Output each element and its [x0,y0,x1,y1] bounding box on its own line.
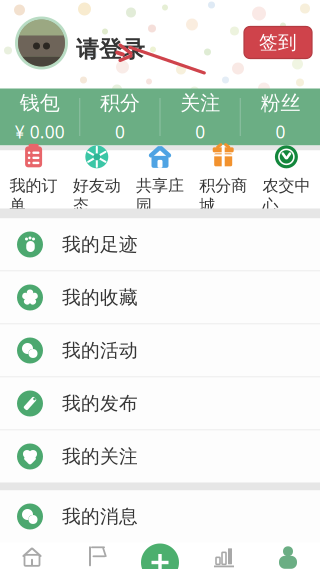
staticText: 我的消息 [62,505,138,528]
staticText: 我的收藏 [62,286,138,309]
staticText: 积分 [100,91,140,115]
button[interactable]: 钱包 [0,82,79,152]
button[interactable]: 粉丝 [241,82,320,152]
staticText: 好友动态 [73,176,121,215]
staticText: ¥ 0.00 [15,120,65,143]
staticText: 请登录 [76,35,145,63]
staticText: 我的发布 [62,392,138,415]
staticText: 关注 [180,91,220,115]
staticText: 0 [115,120,125,143]
button[interactable]: 签到 [244,26,312,58]
button[interactable]: Add [138,540,182,569]
button[interactable]: 请登录 [72,32,149,66]
staticText: 我的足迹 [62,233,138,256]
button[interactable]: 我的关注 [0,430,320,482]
staticText: 0 [195,120,205,143]
staticText: 积分商城 [199,176,247,215]
button[interactable]: 农交中心 [255,138,318,221]
button[interactable]: 积分商城 [192,138,255,221]
button[interactable]: 我的足迹 [0,218,320,270]
staticText: 签到 [259,31,297,54]
staticText: 我的活动 [62,339,138,362]
button[interactable]: 我的订单 [2,138,65,221]
staticText: 钱包 [20,91,60,115]
button[interactable]: 活动 [64,540,128,569]
button[interactable]: 我的消息 [0,490,320,542]
button[interactable]: 我的 [256,540,320,569]
button[interactable]: 我的发布 [0,377,320,429]
button[interactable]: 好友动态 [65,138,128,221]
button[interactable]: 首页 [0,540,64,569]
button[interactable]: 我的收藏 [0,271,320,323]
button[interactable]: 共享庄园 [128,138,192,221]
staticText: 我的关注 [62,445,138,468]
staticText: 共享庄园 [136,176,184,215]
staticText: 0 [275,120,285,143]
staticText: 我的订单 [10,176,58,215]
button[interactable]: 运营 [192,540,256,569]
staticText: 农交中心 [262,176,310,215]
button[interactable]: 我的活动 [0,324,320,376]
button[interactable]: 关注 [160,82,240,152]
button[interactable]: 积分 [80,82,159,152]
staticText: 粉丝 [260,91,300,115]
